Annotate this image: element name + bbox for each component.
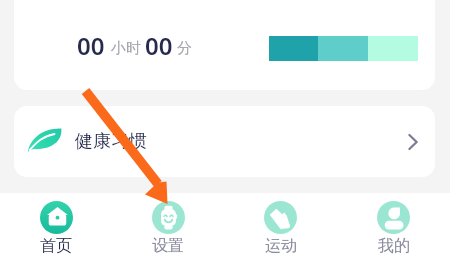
staticText: 设置 <box>152 236 184 256</box>
button[interactable]: 运动 <box>224 193 337 264</box>
button[interactable]: 00 <box>14 0 435 90</box>
staticText: 运动 <box>265 236 297 256</box>
button[interactable]: 首页 <box>0 193 112 264</box>
button[interactable]: 我的 <box>337 193 450 264</box>
staticText: 健康习惯 <box>75 130 147 153</box>
button[interactable]: 健康习惯 <box>14 106 435 177</box>
staticText: 00 <box>77 29 105 62</box>
staticText: 小时 <box>111 39 141 58</box>
staticText: 分 <box>177 39 192 58</box>
staticText: 首页 <box>40 236 72 256</box>
staticText: 00 <box>145 29 173 62</box>
staticText: 我的 <box>378 236 410 256</box>
button[interactable]: 设置 <box>112 193 224 264</box>
